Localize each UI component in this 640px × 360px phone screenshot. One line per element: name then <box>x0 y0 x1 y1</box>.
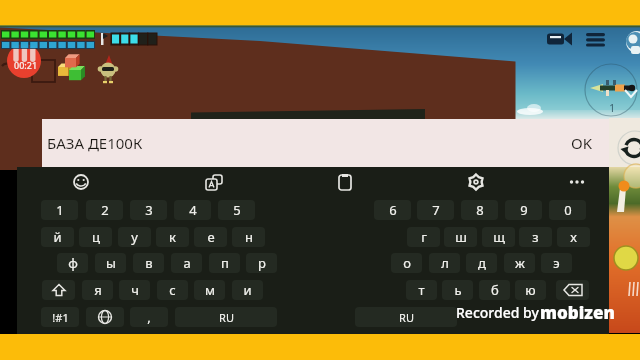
button[interactable] <box>86 307 124 327</box>
staticText: 4 <box>189 201 197 219</box>
button[interactable]: RU <box>355 307 457 327</box>
staticText: БАЗА ДЕ100К <box>47 133 143 153</box>
button[interactable]: 8 <box>461 200 498 220</box>
button[interactable]: 6 <box>374 200 411 220</box>
button[interactable]: т <box>406 280 437 300</box>
staticText: н <box>245 228 253 246</box>
staticText: э <box>553 254 560 272</box>
button[interactable]: ч <box>119 280 150 300</box>
staticText: щ <box>493 228 505 246</box>
button[interactable]: 9 <box>505 200 542 220</box>
button[interactable]: 0 <box>549 200 586 220</box>
button[interactable]: щ <box>482 227 515 247</box>
staticText: в <box>145 254 153 272</box>
staticText: ф <box>68 254 78 272</box>
button[interactable]: ф <box>57 253 88 273</box>
staticText: т <box>418 281 425 299</box>
staticText: й <box>53 228 62 246</box>
button[interactable]: м <box>194 280 225 300</box>
staticText: ю <box>525 281 536 299</box>
staticText: mobizen <box>540 301 615 324</box>
button[interactable]: 1 <box>41 200 78 220</box>
button[interactable]: 4 <box>174 200 211 220</box>
button[interactable]: ш <box>444 227 477 247</box>
staticText: б <box>491 281 499 299</box>
staticText: л <box>441 254 449 272</box>
staticText: ь <box>454 281 462 299</box>
staticText: к <box>169 228 176 246</box>
staticText: м <box>205 281 215 299</box>
staticText: 6 <box>389 201 397 219</box>
staticText: 1 <box>56 201 64 219</box>
button[interactable]: 3 <box>130 200 167 220</box>
button[interactable]: л <box>429 253 460 273</box>
button[interactable]: БАЗА ДЕ100К <box>42 119 609 167</box>
staticText: 3 <box>145 201 153 219</box>
staticText: ж <box>515 254 525 272</box>
staticText: я <box>94 281 102 299</box>
button[interactable]: а <box>171 253 202 273</box>
staticText: 5 <box>233 201 241 219</box>
staticText: ц <box>92 228 100 246</box>
staticText: у <box>131 228 138 246</box>
button[interactable]: й <box>41 227 74 247</box>
button[interactable]: е <box>194 227 227 247</box>
button[interactable]: OK <box>553 119 609 167</box>
button[interactable]: в <box>133 253 164 273</box>
button[interactable]: , <box>130 307 168 327</box>
staticText: 8 <box>476 201 484 219</box>
button[interactable]: ь <box>442 280 473 300</box>
button[interactable]: Translate <box>198 167 228 197</box>
button[interactable]: х <box>557 227 590 247</box>
staticText: 9 <box>520 201 528 219</box>
button[interactable]: ц <box>79 227 112 247</box>
button[interactable]: Settings <box>461 167 491 197</box>
button[interactable]: б <box>479 280 510 300</box>
button[interactable]: 2 <box>86 200 123 220</box>
staticText: с <box>169 281 176 299</box>
button[interactable]: с <box>157 280 188 300</box>
button[interactable]: !#1 <box>41 307 79 327</box>
button[interactable]: 7 <box>417 200 454 220</box>
button[interactable]: к <box>156 227 189 247</box>
staticText: !#1 <box>52 310 69 325</box>
staticText: , <box>147 308 151 326</box>
button[interactable]: Clipboard <box>330 167 360 197</box>
staticText: 2 <box>101 201 109 219</box>
button[interactable]: п <box>209 253 240 273</box>
button[interactable] <box>556 280 589 300</box>
staticText: д <box>478 254 486 272</box>
button[interactable]: н <box>232 227 265 247</box>
button[interactable] <box>42 280 75 300</box>
button[interactable]: RU <box>175 307 277 327</box>
staticText: а <box>183 254 191 272</box>
staticText: о <box>403 254 411 272</box>
staticText: ы <box>106 254 116 272</box>
staticText: г <box>421 228 427 246</box>
button[interactable]: ж <box>504 253 535 273</box>
button[interactable]: ы <box>95 253 126 273</box>
button[interactable]: р <box>246 253 277 273</box>
button[interactable]: о <box>391 253 422 273</box>
button[interactable]: ю <box>515 280 546 300</box>
button[interactable]: More options <box>562 167 592 197</box>
staticText: OK <box>571 133 593 153</box>
button[interactable]: д <box>466 253 497 273</box>
button[interactable]: 5 <box>218 200 255 220</box>
staticText: и <box>243 281 252 299</box>
staticText: з <box>532 228 539 246</box>
button[interactable]: з <box>519 227 552 247</box>
staticText: 1 <box>609 101 615 115</box>
staticText: п <box>221 254 229 272</box>
staticText: 00:21 <box>14 59 38 71</box>
staticText: х <box>570 228 577 246</box>
button[interactable]: и <box>232 280 263 300</box>
staticText: ч <box>131 281 139 299</box>
button[interactable]: г <box>407 227 440 247</box>
button[interactable]: у <box>118 227 151 247</box>
button[interactable]: я <box>82 280 113 300</box>
button[interactable]: э <box>541 253 572 273</box>
button[interactable]: Emoji <box>66 167 96 197</box>
staticText: 7 <box>432 201 440 219</box>
staticText: р <box>258 254 266 272</box>
